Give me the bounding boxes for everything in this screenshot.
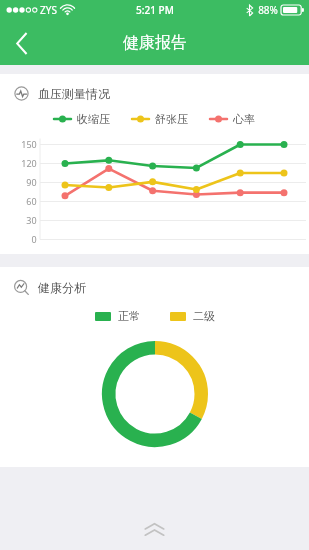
staticText: 健康分析 bbox=[38, 280, 86, 295]
staticText: 5:21 PM bbox=[136, 3, 174, 17]
button[interactable]: 血压测量情况 bbox=[0, 74, 309, 254]
button[interactable]: 健康分析 bbox=[0, 267, 309, 467]
staticText: 收缩压 bbox=[77, 112, 110, 126]
staticText: 正常 bbox=[118, 309, 140, 323]
staticText: 血压测量情况 bbox=[38, 86, 110, 101]
staticText: 心率 bbox=[233, 112, 255, 126]
staticText: 30 bbox=[26, 214, 37, 226]
staticText: 88% bbox=[258, 3, 278, 17]
button[interactable]: Collapse bbox=[0, 516, 309, 542]
staticText: 0 bbox=[31, 233, 37, 245]
staticText: 舒张压 bbox=[155, 112, 188, 126]
staticText: ZYS bbox=[40, 3, 57, 17]
staticText: 150 bbox=[21, 138, 37, 150]
staticText: 90 bbox=[26, 176, 37, 188]
staticText: 二级 bbox=[193, 309, 215, 323]
staticText: 健康报告 bbox=[123, 33, 187, 53]
staticText: 120 bbox=[21, 157, 37, 169]
staticText: 60 bbox=[26, 195, 37, 207]
button[interactable]: Back bbox=[0, 21, 44, 65]
